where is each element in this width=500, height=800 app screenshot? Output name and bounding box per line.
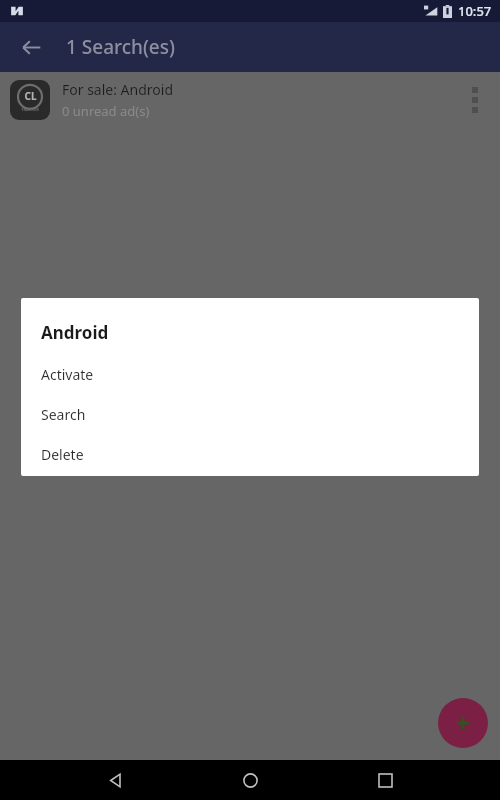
button[interactable]: Add search	[438, 698, 488, 748]
button[interactable]: CL	[0, 76, 500, 124]
staticText: Android	[41, 321, 109, 344]
staticText: 10:57	[458, 2, 492, 20]
button[interactable]: Home	[230, 760, 270, 800]
staticText: 0 unread ad(s)	[62, 102, 150, 120]
button[interactable]: Recent apps	[365, 760, 405, 800]
button[interactable]: Navigate up	[7, 23, 55, 71]
staticText: For sale: Android	[62, 80, 174, 99]
staticText: TRACKER	[21, 107, 39, 112]
button[interactable]: More options	[458, 76, 492, 124]
staticText: 1 Search(es)	[66, 34, 175, 60]
staticText: Search	[41, 405, 86, 424]
staticText: Activate	[41, 365, 94, 384]
staticText: Delete	[41, 445, 84, 464]
button[interactable]: Back	[95, 760, 135, 800]
button[interactable]: Delete	[21, 434, 479, 474]
button[interactable]: Activate	[21, 354, 479, 394]
staticText: CL	[24, 89, 37, 103]
button[interactable]: Search	[21, 394, 479, 434]
